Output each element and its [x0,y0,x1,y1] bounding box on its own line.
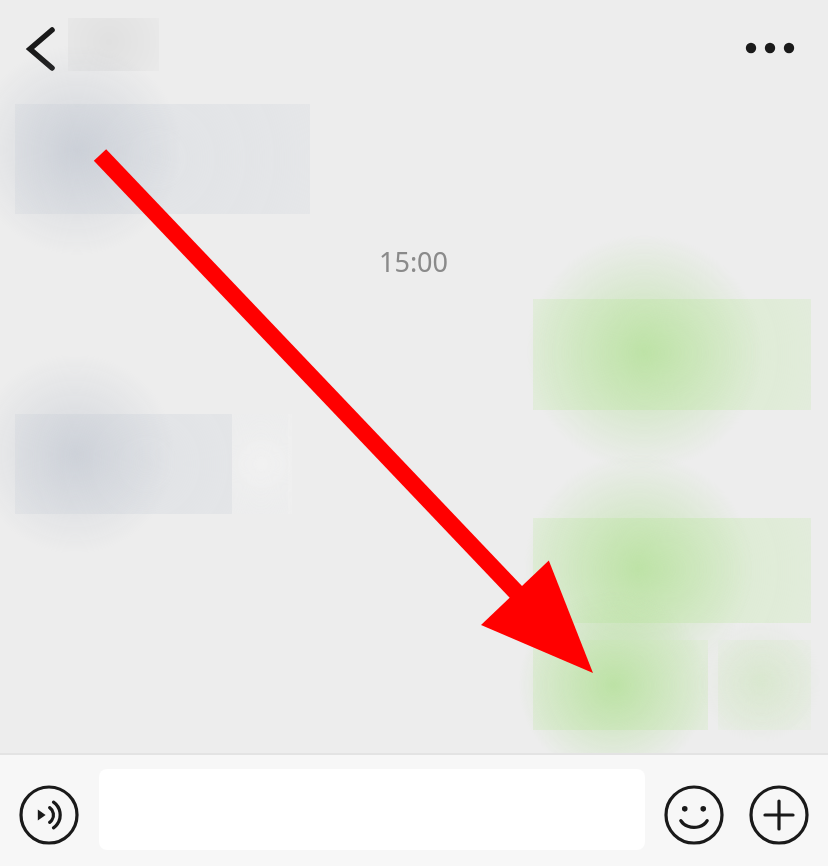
button[interactable]: Sent message [533,640,708,730]
button[interactable]: More actions [748,784,810,846]
button[interactable]: Emoji [663,784,725,846]
button[interactable]: Received message [15,104,310,214]
button[interactable]: Received message [15,414,288,514]
button[interactable]: Sent message [533,518,811,623]
button[interactable]: More options [736,26,804,70]
button[interactable]: Sent message [718,640,811,730]
button[interactable]: Sent message [533,299,811,410]
button[interactable]: Voice message [18,784,80,846]
button[interactable]: Back [18,24,64,74]
